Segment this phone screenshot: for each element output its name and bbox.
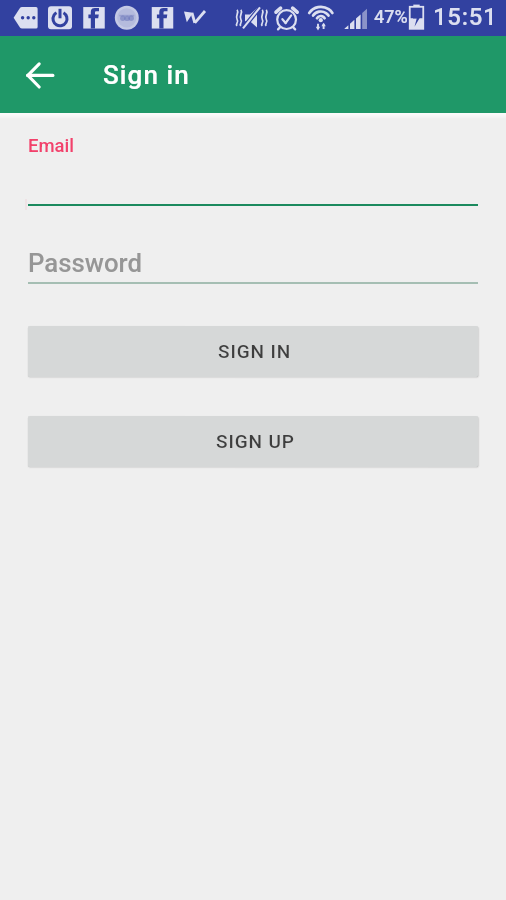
staticText: Sign in — [103, 60, 190, 90]
staticText: SIGN IN — [218, 340, 292, 362]
button[interactable]: Back — [16, 50, 64, 98]
button[interactable]: SIGN IN — [28, 326, 478, 377]
button[interactable]: Password field — [0, 212, 506, 290]
button[interactable]: Email field — [0, 120, 506, 212]
staticText: Email — [28, 135, 74, 157]
staticText: 47% — [374, 6, 408, 27]
staticText: 15:51 — [433, 3, 498, 31]
staticText: Password — [28, 248, 142, 278]
staticText: SIGN UP — [216, 430, 295, 452]
button[interactable]: SIGN UP — [28, 416, 478, 467]
